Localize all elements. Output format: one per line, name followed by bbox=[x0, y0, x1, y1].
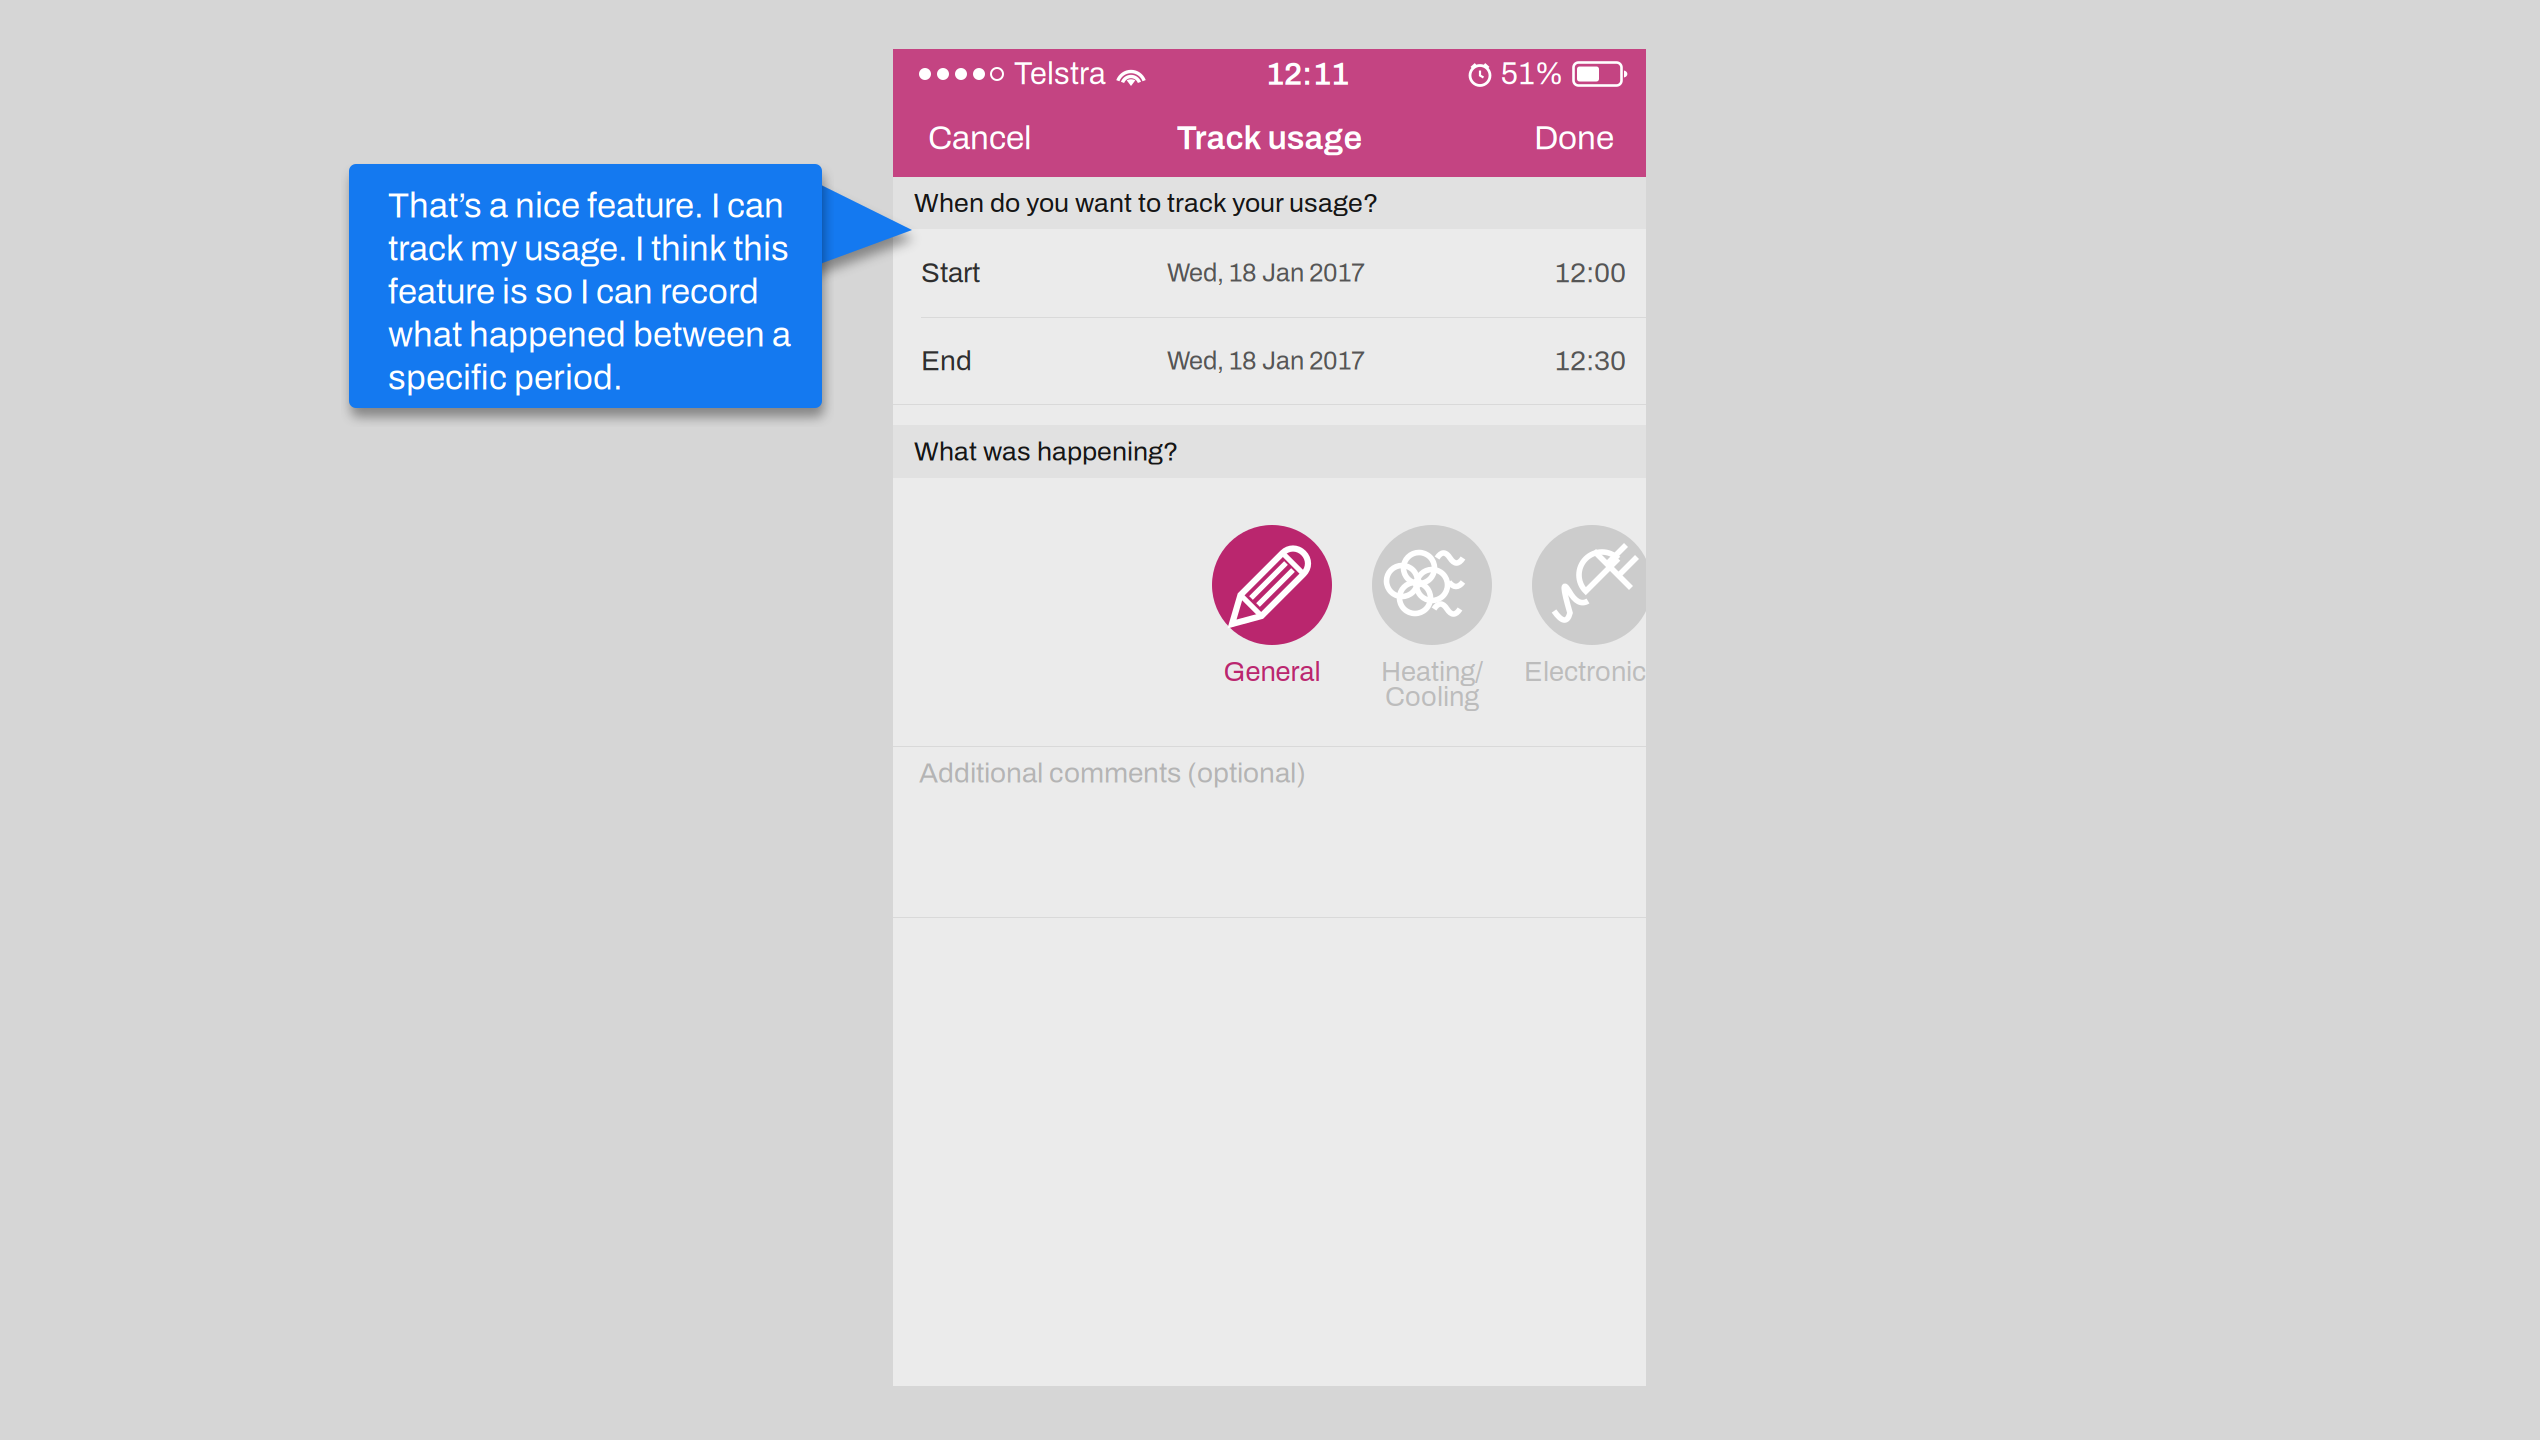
staticText: Heating/ bbox=[1381, 657, 1483, 687]
button[interactable]: General bbox=[1192, 525, 1352, 735]
staticText: Telstra bbox=[1014, 57, 1106, 91]
staticText: feature is so I can record bbox=[388, 273, 759, 311]
staticText: track my usage. I think this bbox=[388, 230, 789, 268]
button[interactable]: Done bbox=[1516, 99, 1646, 177]
button[interactable]: End bbox=[893, 318, 1646, 404]
staticText: Cancel bbox=[928, 120, 1032, 156]
staticText: Track usage bbox=[1176, 120, 1362, 156]
staticText: Electronics bbox=[1524, 657, 1660, 687]
button[interactable]: Cancel bbox=[893, 99, 1050, 177]
staticText: 51% bbox=[1500, 57, 1563, 91]
staticText: Wed, 18 Jan 2017 bbox=[1167, 259, 1365, 287]
staticText: General bbox=[1223, 657, 1320, 687]
staticText: 12:11 bbox=[1266, 57, 1349, 91]
staticText: That’s a nice feature. I can bbox=[388, 187, 784, 225]
staticText: Start bbox=[921, 258, 980, 288]
staticText: Wed, 18 Jan 2017 bbox=[1167, 347, 1365, 375]
staticText: 12:00 bbox=[1555, 258, 1626, 288]
staticText: What was happening? bbox=[914, 437, 1178, 466]
staticText: Cooling bbox=[1385, 682, 1479, 712]
button[interactable]: Electronics bbox=[1512, 525, 1672, 735]
button[interactable]: Heating/ bbox=[1352, 525, 1512, 735]
staticText: specific period. bbox=[388, 359, 623, 397]
staticText: End bbox=[921, 346, 972, 376]
staticText: Additional comments (optional) bbox=[919, 758, 1306, 788]
staticText: 12:30 bbox=[1555, 346, 1626, 376]
staticText: When do you want to track your usage? bbox=[914, 188, 1378, 217]
staticText: what happened between a bbox=[388, 316, 791, 354]
button[interactable]: Start bbox=[893, 229, 1646, 317]
staticText: Done bbox=[1534, 120, 1614, 156]
